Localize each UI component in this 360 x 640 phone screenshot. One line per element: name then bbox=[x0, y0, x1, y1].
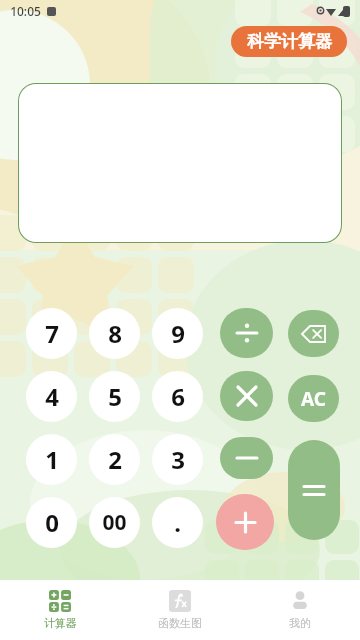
staticText: 函数生图 bbox=[158, 616, 202, 630]
button[interactable]: Backspace bbox=[288, 310, 339, 357]
button[interactable]: 2 bbox=[89, 434, 140, 485]
staticText: 2 bbox=[108, 443, 122, 476]
staticText: AC bbox=[301, 386, 326, 412]
button[interactable]: 8 bbox=[89, 308, 140, 359]
staticText: 7 bbox=[45, 317, 59, 350]
button[interactable] bbox=[220, 308, 273, 358]
staticText: 00 bbox=[102, 508, 127, 537]
button[interactable]: All clear bbox=[288, 375, 339, 422]
button[interactable]: 5 bbox=[89, 371, 140, 422]
button[interactable]: 科学计算器 bbox=[231, 26, 347, 57]
button[interactable]: 7 bbox=[26, 308, 77, 359]
staticText: 10:05 bbox=[10, 3, 41, 19]
button[interactable]: 9 bbox=[152, 308, 203, 359]
button[interactable] bbox=[220, 437, 273, 479]
button[interactable]: 00 bbox=[89, 497, 140, 548]
staticText: 计算器 bbox=[44, 616, 77, 630]
staticText: 6 bbox=[171, 380, 185, 413]
button[interactable]: 计算器 bbox=[0, 580, 120, 640]
staticText: 4 bbox=[45, 380, 59, 413]
button[interactable]: 3 bbox=[152, 434, 203, 485]
staticText: 8 bbox=[108, 317, 122, 350]
staticText: 科学计算器 bbox=[247, 31, 332, 52]
staticText: 3 bbox=[171, 443, 185, 476]
staticText: 0 bbox=[45, 506, 59, 539]
staticText: 5 bbox=[108, 380, 122, 413]
button[interactable]: 函数生图 bbox=[120, 580, 240, 640]
button[interactable]: 0 bbox=[26, 497, 77, 548]
staticText: 9 bbox=[171, 317, 185, 350]
button[interactable]: Equals bbox=[288, 440, 340, 540]
button[interactable] bbox=[220, 371, 273, 421]
button[interactable] bbox=[19, 84, 341, 242]
staticText: 我的 bbox=[289, 616, 311, 630]
staticText: 1 bbox=[45, 443, 59, 476]
staticText: . bbox=[174, 506, 181, 539]
button[interactable] bbox=[216, 494, 274, 550]
button[interactable]: . bbox=[152, 497, 203, 548]
button[interactable]: 4 bbox=[26, 371, 77, 422]
button[interactable]: 我的 bbox=[240, 580, 360, 640]
button[interactable]: 1 bbox=[26, 434, 77, 485]
button[interactable]: 6 bbox=[152, 371, 203, 422]
